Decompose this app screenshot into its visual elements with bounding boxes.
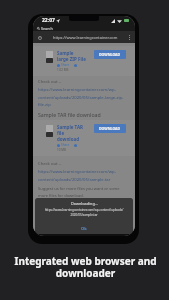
staticText: DOWNLOAD [99, 126, 121, 131]
other: Site info [38, 36, 42, 40]
staticText: https://www.learningcontainer.com/wp- co… [38, 169, 117, 182]
staticText: Share [61, 143, 70, 147]
button[interactable]: Ok [78, 225, 90, 232]
staticText: DOWNLOAD [99, 52, 121, 57]
button[interactable]: DOWNLOAD [94, 50, 126, 59]
staticText: https://www.learningcontainer.com/wp- co… [38, 87, 124, 107]
staticText: https://www.learningcontainer.com/wp-con… [39, 208, 129, 217]
staticText: 10 MB [57, 148, 66, 152]
staticText: 22:07 [42, 17, 55, 24]
staticText: https://www.learningcontainer.com [53, 35, 118, 40]
staticText: file [57, 130, 65, 136]
staticText: Check out -- [38, 161, 62, 167]
staticText: Share [61, 63, 70, 67]
staticText: Integrated web browser and downloader [1, 254, 169, 280]
button[interactable]: Sample TAR [33, 120, 135, 156]
staticText: Sample TAR [57, 124, 83, 130]
button[interactable]: More options [129, 35, 130, 40]
button[interactable]: Sample [33, 46, 135, 76]
staticText: 1.02 MB [57, 68, 69, 72]
staticText: Search [41, 26, 53, 31]
staticText: large ZIP File [57, 56, 86, 62]
staticText: Downloading... [71, 201, 98, 206]
staticText: Check out -- [38, 79, 62, 85]
staticText: download [57, 136, 80, 142]
staticText: Sample [57, 50, 74, 56]
staticText: Sample TAR file download [38, 111, 101, 118]
staticText: Suggest us for more files you want or so… [38, 186, 120, 199]
staticText: Ok [81, 226, 87, 231]
button[interactable]: DOWNLOAD [94, 124, 126, 133]
